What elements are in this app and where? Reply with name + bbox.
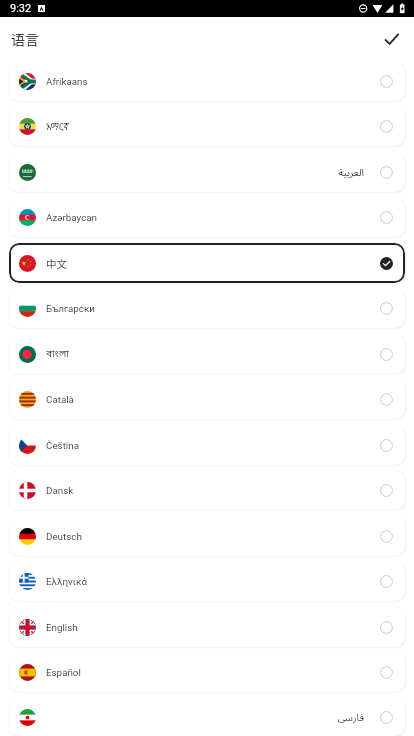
staticText: Català xyxy=(46,394,364,405)
staticText: Azərbaycan xyxy=(46,212,364,223)
staticText: Български xyxy=(46,303,364,314)
button[interactable]: Dansk xyxy=(9,470,405,510)
button[interactable]: Confirm xyxy=(377,23,407,53)
button[interactable]: العربية xyxy=(9,152,405,192)
staticText: አማርኛ xyxy=(46,120,364,133)
staticText: 9:32 xyxy=(10,2,32,15)
button[interactable]: Ελληνικά xyxy=(9,561,405,601)
button[interactable]: English xyxy=(9,607,405,647)
staticText: Deutsch xyxy=(46,531,364,542)
staticText: বাংলা xyxy=(46,348,364,361)
button[interactable]: Español xyxy=(9,652,405,692)
staticText: Ελληνικά xyxy=(46,576,364,587)
button[interactable]: Català xyxy=(9,379,405,419)
staticText: 中文 xyxy=(46,256,364,271)
button[interactable]: Afrikaans xyxy=(9,61,405,101)
staticText: Afrikaans xyxy=(46,76,364,87)
staticText: Dansk xyxy=(46,485,364,496)
button[interactable]: Čeština xyxy=(9,425,405,465)
staticText: Čeština xyxy=(46,440,364,451)
staticText: العربية xyxy=(46,165,364,179)
staticText: English xyxy=(46,622,364,633)
button[interactable]: 中文 xyxy=(9,243,405,283)
button[interactable]: Български xyxy=(9,288,405,328)
button[interactable]: አማርኛ xyxy=(9,106,405,146)
staticText: Español xyxy=(46,667,364,678)
staticText: فارسی xyxy=(46,710,364,724)
staticText: 语言 xyxy=(11,29,39,49)
button[interactable]: فارسی xyxy=(9,698,405,736)
button[interactable]: বাংলা xyxy=(9,334,405,374)
button[interactable]: Deutsch xyxy=(9,516,405,556)
button[interactable]: Azərbaycan xyxy=(9,197,405,237)
